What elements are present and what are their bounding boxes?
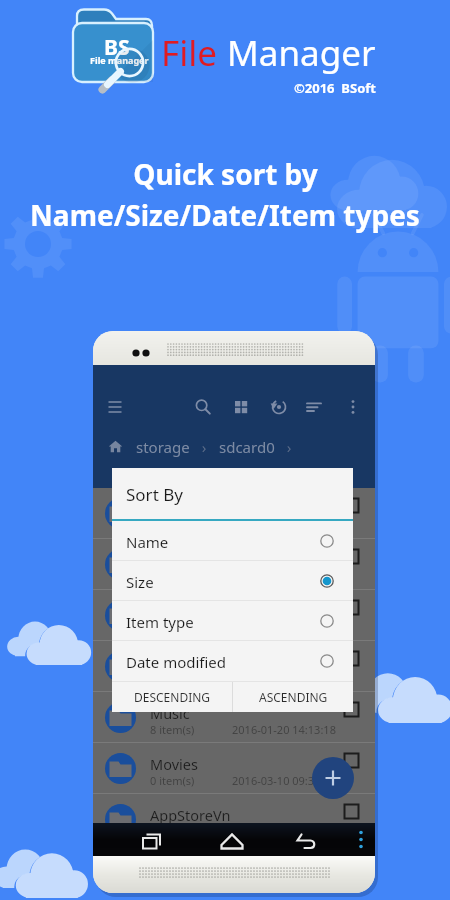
staticText: 12 item(s): [150, 518, 201, 533]
staticText: 2016-02-15 13:10:02: [232, 824, 336, 839]
staticText: BS: [104, 33, 130, 62]
staticText: Item type: [126, 612, 194, 632]
staticText: Name/Size/Date/Item types: [30, 196, 420, 234]
staticText: 2 item(s): [150, 824, 195, 839]
button[interactable]: DCIM: [93, 539, 375, 590]
button[interactable]: Add: [312, 757, 354, 799]
button[interactable]: Documents: [93, 641, 375, 692]
staticText: Manager: [227, 29, 376, 77]
staticText: 8 item(s): [150, 722, 195, 737]
staticText: 3 item(s): [150, 569, 195, 584]
staticText: AppStoreVn: [150, 805, 231, 825]
button[interactable]: Grid view: [231, 397, 251, 417]
staticText: ©2016 BSoft: [294, 79, 376, 97]
staticText: 21 item(s): [150, 620, 201, 635]
button[interactable]: sdcard0: [219, 437, 275, 457]
staticText: Documents: [150, 652, 229, 672]
button[interactable]: DESCENDING: [112, 682, 232, 712]
button[interactable]: Size: [112, 561, 353, 601]
staticText: 2016-01-02 17:05:33: [232, 569, 336, 584]
staticText: 2016-01-20 14:13:18: [232, 722, 336, 737]
button[interactable]: Android: [93, 488, 375, 539]
staticText: 2016-02-22 20:31:55: [232, 671, 336, 686]
staticText: Sort By: [126, 483, 183, 506]
staticText: Android: [150, 499, 205, 519]
staticText: DCIM: [150, 550, 188, 570]
staticText: 2016-03-10 09:31:40: [232, 773, 336, 788]
button[interactable]: Date modified: [112, 641, 353, 681]
button[interactable]: Menu: [105, 397, 125, 417]
staticText: ›: [275, 437, 292, 457]
button[interactable]: Home: [219, 828, 245, 854]
staticText: 0 item(s): [150, 773, 195, 788]
button[interactable]: Recents: [139, 828, 165, 854]
button[interactable]: Music: [93, 692, 375, 743]
button[interactable]: Home folder: [108, 439, 123, 454]
staticText: ASCENDING: [259, 689, 328, 705]
staticText: File manager: [90, 54, 149, 66]
button[interactable]: storage: [136, 437, 190, 457]
staticText: Movies: [150, 754, 198, 774]
staticText: 5 item(s): [150, 671, 195, 686]
button[interactable]: AppStoreVn: [93, 794, 375, 845]
button[interactable]: More options: [349, 827, 373, 851]
button[interactable]: Movies: [93, 743, 375, 794]
staticText: File: [161, 29, 217, 77]
staticText: Size: [126, 572, 154, 592]
button[interactable]: Back: [294, 828, 320, 854]
staticText: Name: [126, 532, 169, 552]
button[interactable]: History: [269, 397, 289, 417]
button[interactable]: Name: [112, 521, 353, 561]
staticText: 2016-02-11 08:22:04: [232, 518, 336, 533]
button[interactable]: Download: [93, 590, 375, 641]
button[interactable]: More options: [343, 397, 363, 417]
button[interactable]: Search: [193, 397, 213, 417]
staticText: ›: [190, 437, 219, 457]
staticText: DESCENDING: [134, 689, 211, 705]
button[interactable]: Item type: [112, 601, 353, 641]
staticText: Date modified: [126, 652, 227, 672]
staticText: 2016-03-02 11:42:10: [232, 620, 336, 635]
staticText: Quick sort by: [133, 155, 318, 193]
staticText: Music: [150, 703, 190, 723]
button[interactable]: ASCENDING: [233, 682, 353, 712]
staticText: Download: [150, 601, 219, 621]
button[interactable]: Sort: [304, 397, 324, 417]
